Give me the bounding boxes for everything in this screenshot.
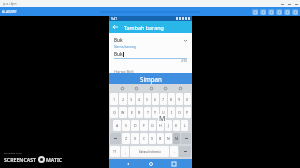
- button[interactable]: 7: [160, 93, 167, 105]
- staticText: Buk: [114, 51, 123, 57]
- staticText: O: [178, 110, 181, 115]
- button[interactable]: Bahasa Indonesia: [130, 146, 169, 157]
- button[interactable]: Toolbar action 1: [252, 9, 258, 15]
- button[interactable]: V: [149, 133, 156, 144]
- button[interactable]: 0: [184, 93, 191, 105]
- button[interactable]: I: [168, 107, 175, 118]
- staticText: 6: [154, 97, 157, 102]
- button[interactable]: Toolbar action 4: [276, 9, 282, 15]
- staticText: Bahasa Indonesia: [139, 150, 161, 154]
- button[interactable]: 8: [168, 93, 175, 105]
- button[interactable]: Back: [123, 159, 132, 168]
- button[interactable]: A: [113, 120, 121, 131]
- button[interactable]: W: [119, 107, 127, 118]
- staticText: Z: [125, 136, 128, 141]
- staticText: ?1: [113, 149, 117, 154]
- button[interactable]: S: [122, 120, 130, 131]
- button[interactable]: Home: [146, 159, 155, 168]
- staticText: L: [184, 123, 186, 128]
- staticText: 5: [146, 97, 149, 102]
- staticText: 3: [130, 97, 133, 102]
- staticText: R: [138, 110, 141, 115]
- button[interactable]: Recents: [169, 159, 178, 168]
- staticText: MATIC: [46, 156, 63, 163]
- staticText: T: [147, 110, 149, 115]
- button[interactable]: C: [140, 133, 148, 144]
- button[interactable]: B: [157, 133, 164, 144]
- button[interactable]: K: [173, 120, 180, 131]
- button[interactable]: 6: [152, 93, 159, 105]
- staticText: A: [116, 123, 119, 128]
- staticText: N: [167, 136, 170, 141]
- button[interactable]: D: [131, 120, 139, 131]
- staticText: 9:41: [111, 17, 117, 21]
- button[interactable]: Toolbar action 3: [268, 9, 274, 15]
- button[interactable]: 9: [176, 93, 183, 105]
- button[interactable]: Back: [109, 21, 121, 33]
- button[interactable]: N: [165, 133, 172, 144]
- button[interactable]: Toolbar action 6: [292, 9, 298, 15]
- button[interactable]: Z: [122, 133, 130, 144]
- button[interactable]: Window control: [280, 2, 284, 6]
- button[interactable]: F: [140, 120, 148, 131]
- button[interactable]: J: [165, 120, 172, 131]
- staticText: .: [174, 149, 175, 154]
- staticText: B: [159, 136, 162, 141]
- staticText: H: [159, 123, 162, 128]
- button[interactable]: ,: [121, 146, 129, 157]
- staticText: W: [121, 110, 125, 115]
- button[interactable]: Window control: [287, 2, 291, 6]
- button[interactable]: Voice input: [162, 85, 168, 91]
- button[interactable]: Y: [152, 107, 159, 118]
- button[interactable]: Toolbar action 2: [260, 9, 266, 15]
- staticText: Q: [113, 110, 116, 115]
- button[interactable]: Backspace: [181, 133, 191, 144]
- button[interactable]: 3: [128, 93, 135, 105]
- button[interactable]: Shift: [110, 133, 121, 144]
- staticText: K: [175, 123, 178, 128]
- button[interactable]: Enter: [179, 146, 191, 157]
- button[interactable]: .: [170, 146, 178, 157]
- button[interactable]: M: [173, 133, 180, 144]
- staticText: Y: [154, 110, 157, 115]
- staticText: M: [175, 136, 179, 141]
- button[interactable]: Buk: [114, 37, 187, 43]
- staticText: 9: [178, 97, 181, 102]
- button[interactable]: Window control: [294, 2, 298, 6]
- button[interactable]: H: [157, 120, 164, 131]
- button[interactable]: P: [184, 107, 191, 118]
- button[interactable]: GIF: [133, 85, 139, 91]
- button[interactable]: Settings: [177, 85, 183, 91]
- button[interactable]: 5: [144, 93, 151, 105]
- button[interactable]: Toolbar action 5: [284, 9, 290, 15]
- staticText: 8: [170, 97, 173, 102]
- staticText: F: [143, 123, 145, 128]
- staticText: 2: [122, 97, 125, 102]
- staticText: J: [168, 123, 169, 128]
- button[interactable]: Sticker: [148, 85, 154, 91]
- button[interactable]: Simpan: [109, 73, 192, 84]
- button[interactable]: O: [176, 107, 183, 118]
- button[interactable]: L: [181, 120, 188, 131]
- staticText: M: [159, 114, 166, 123]
- button[interactable]: U: [160, 107, 167, 118]
- staticText: 0: [186, 97, 189, 102]
- staticText: 4/50: [181, 59, 187, 63]
- button[interactable]: Emoji: [119, 85, 125, 91]
- button[interactable]: E: [128, 107, 135, 118]
- button[interactable]: ?1: [110, 146, 120, 157]
- button[interactable]: 4: [136, 93, 143, 105]
- staticText: I: [171, 110, 173, 115]
- staticText: 1: [113, 97, 116, 102]
- staticText: E: [131, 110, 133, 115]
- button[interactable]: 1: [110, 93, 118, 105]
- button[interactable]: X: [131, 133, 139, 144]
- staticText: Harga Beli: [114, 69, 134, 73]
- button[interactable]: Q: [110, 107, 118, 118]
- staticText: Simpan: [140, 75, 162, 83]
- button[interactable]: T: [144, 107, 151, 118]
- staticText: 4: [138, 97, 141, 102]
- button[interactable]: G: [149, 120, 156, 131]
- button[interactable]: 2: [119, 93, 127, 105]
- button[interactable]: R: [136, 107, 143, 118]
